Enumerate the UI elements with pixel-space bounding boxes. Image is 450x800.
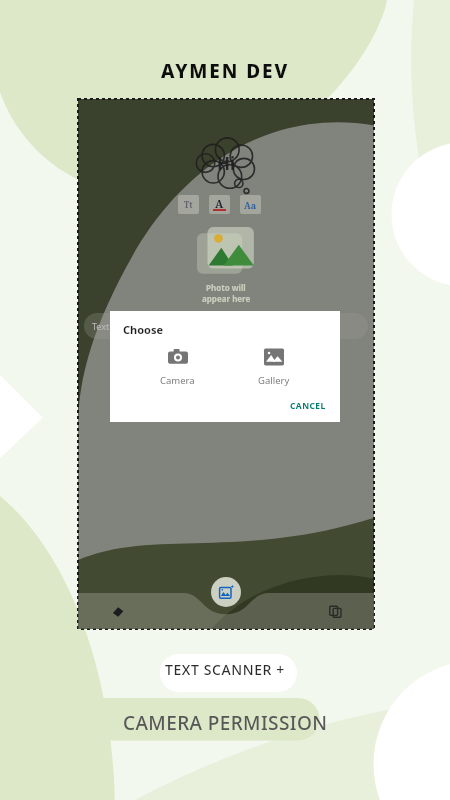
button[interactable]: CAMERA PERMISSION	[0, 710, 450, 736]
staticText: CANCEL	[290, 400, 326, 412]
staticText: CAMERA PERMISSION	[123, 710, 328, 736]
button[interactable]: Document	[324, 600, 346, 622]
button[interactable]: CANCEL	[286, 398, 330, 414]
button[interactable]: Gallery	[244, 344, 304, 390]
button[interactable]: TEXT SCANNER +	[0, 660, 450, 679]
button[interactable]: Text wi	[84, 313, 368, 339]
staticText: Gallery	[258, 374, 290, 387]
staticText: TEXT SCANNER +	[165, 660, 285, 679]
staticText: Text wi	[92, 320, 122, 332]
button[interactable]: Erase	[106, 600, 128, 622]
staticText: Tt	[184, 199, 193, 210]
staticText: appear here	[202, 293, 251, 304]
staticText: Photo will	[206, 282, 246, 293]
staticText: Camera	[160, 374, 195, 387]
button[interactable]: Tt	[178, 195, 199, 214]
button[interactable]: Camera	[146, 344, 209, 390]
staticText: Choose	[123, 322, 164, 337]
button[interactable]: A	[209, 195, 230, 214]
staticText: AYMEN DEV	[161, 58, 290, 84]
staticText: Hi	[217, 152, 236, 175]
button[interactable]: Add image	[211, 577, 241, 607]
staticText: Aa	[244, 199, 257, 211]
staticText: A	[215, 196, 224, 211]
button[interactable]: Aa	[240, 195, 261, 214]
